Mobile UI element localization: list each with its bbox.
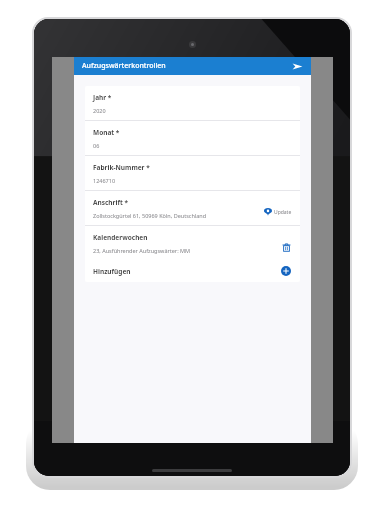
staticText: Zollstockgürtel 61, 50969 Köln, Deutschl…: [93, 212, 207, 219]
button[interactable]: Kalenderwochen: [85, 226, 300, 260]
button[interactable]: Monat *: [85, 121, 300, 155]
button[interactable]: Jahr *: [85, 86, 300, 120]
staticText: Update: [274, 209, 292, 216]
staticText: 06: [93, 142, 100, 149]
button[interactable]: Senden: [289, 58, 305, 74]
button[interactable]: Fabrik-Nummer *: [85, 156, 300, 190]
button[interactable]: Hinzufügen: [85, 260, 300, 282]
staticText: 23, Ausführender Aufzugswärter: MM: [93, 247, 191, 254]
other: Hinzufügen: [278, 263, 294, 279]
button[interactable]: Update: [262, 206, 294, 218]
staticText: Anschrift *: [93, 198, 128, 207]
staticText: 2020: [93, 107, 106, 114]
staticText: 1246710: [93, 177, 116, 184]
staticText: Hinzufügen: [93, 267, 278, 276]
staticText: Jahr *: [93, 93, 112, 102]
staticText: Aufzugswärterkontrollen: [82, 61, 166, 71]
staticText: Fabrik-Nummer *: [93, 163, 150, 172]
staticText: Kalenderwochen: [93, 233, 148, 242]
staticText: Monat *: [93, 128, 120, 137]
button[interactable]: Löschen: [278, 239, 294, 255]
button[interactable]: Anschrift *: [85, 191, 300, 225]
